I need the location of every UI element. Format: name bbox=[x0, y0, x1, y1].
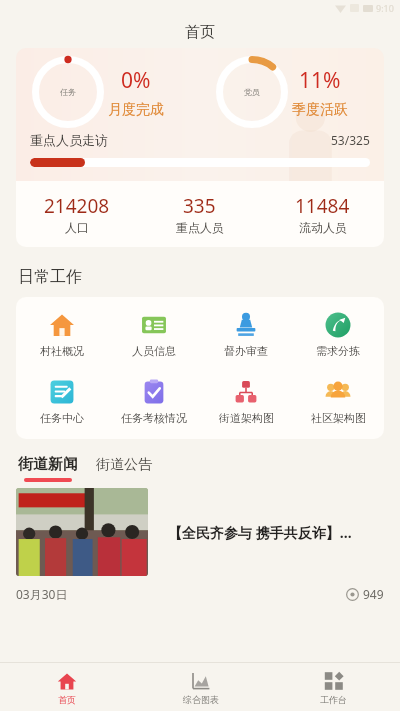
button[interactable]: 社区架构图 bbox=[292, 376, 384, 427]
staticText: 首页 bbox=[185, 23, 215, 42]
button[interactable]: 街道新闻 bbox=[18, 455, 78, 482]
staticText: 月度完成 bbox=[108, 101, 164, 119]
button[interactable]: 村社概况 bbox=[16, 309, 108, 360]
staticText: 社区架构图 bbox=[311, 411, 366, 425]
button[interactable]: 督办审查 bbox=[200, 309, 292, 360]
button[interactable]: 任务中心 bbox=[16, 376, 108, 427]
button[interactable]: 需求分拣 bbox=[292, 309, 384, 360]
staticText: 需求分拣 bbox=[316, 344, 360, 358]
button[interactable]: 335 bbox=[138, 193, 261, 235]
staticText: 11484 bbox=[295, 193, 350, 219]
staticText: 0% bbox=[121, 66, 151, 95]
button[interactable]: 首页 bbox=[0, 663, 134, 711]
staticText: 9:10 bbox=[376, 2, 394, 14]
staticText: 重点人员 bbox=[176, 220, 224, 235]
staticText: 季度活跃 bbox=[292, 101, 348, 119]
staticText: 街道公告 bbox=[96, 456, 152, 474]
button[interactable]: 街道公告 bbox=[96, 456, 152, 482]
staticText: 街道新闻 bbox=[18, 455, 78, 474]
staticText: 335 bbox=[183, 193, 216, 219]
staticText: 949 bbox=[363, 586, 384, 602]
staticText: 11% bbox=[299, 66, 341, 95]
button[interactable]: 214208 bbox=[16, 193, 138, 235]
staticText: 人口 bbox=[65, 220, 89, 235]
staticText: 53/325 bbox=[331, 132, 370, 148]
staticText: 214208 bbox=[44, 193, 110, 219]
staticText: 任务中心 bbox=[40, 411, 84, 425]
staticText: 03月30日 bbox=[16, 586, 68, 602]
staticText: 督办审查 bbox=[224, 344, 268, 358]
staticText: 党员 bbox=[244, 87, 260, 97]
staticText: 工作台 bbox=[320, 694, 347, 705]
button[interactable]: 街道架构图 bbox=[200, 376, 292, 427]
staticText: 人员信息 bbox=[132, 344, 176, 358]
staticText: 【全民齐参与 携手共反诈】… bbox=[168, 523, 352, 542]
staticText: 日常工作 bbox=[18, 267, 82, 287]
staticText: 任务考核情况 bbox=[121, 411, 187, 425]
button[interactable]: 11484 bbox=[261, 193, 384, 235]
staticText: 任务 bbox=[60, 87, 76, 97]
staticText: 首页 bbox=[58, 694, 76, 705]
button[interactable]: 【全民齐参与 携手共反诈】… bbox=[16, 482, 384, 602]
button[interactable]: 任务考核情况 bbox=[108, 376, 200, 427]
staticText: 流动人员 bbox=[299, 220, 347, 235]
button[interactable]: 人员信息 bbox=[108, 309, 200, 360]
staticText: 村社概况 bbox=[40, 344, 84, 358]
button[interactable]: 工作台 bbox=[267, 663, 400, 711]
staticText: 重点人员走访 bbox=[30, 132, 108, 148]
staticText: 综合图表 bbox=[183, 694, 219, 705]
staticText: 街道架构图 bbox=[219, 411, 274, 425]
button[interactable]: 综合图表 bbox=[134, 663, 267, 711]
